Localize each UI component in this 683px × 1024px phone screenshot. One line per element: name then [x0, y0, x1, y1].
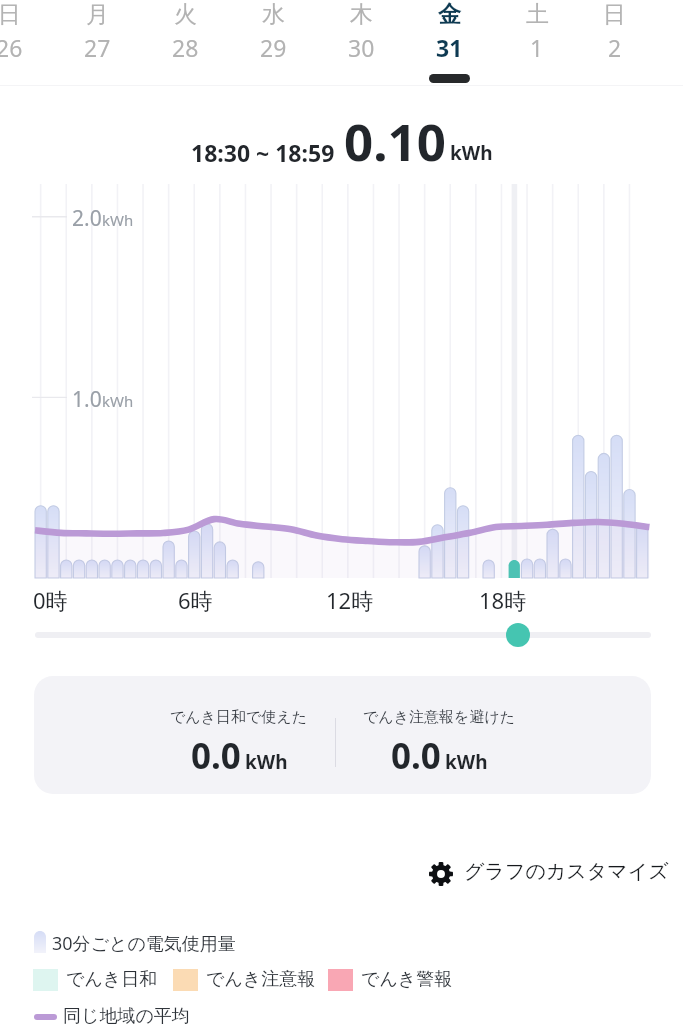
staticText: 6時	[178, 585, 213, 615]
staticText: 木	[350, 0, 373, 29]
staticText: でんき警報	[361, 968, 453, 991]
staticText: 同じ地域の平均	[63, 1005, 190, 1024]
staticText: 28	[172, 32, 199, 63]
staticText: 日	[0, 0, 21, 29]
button[interactable]: 木	[317, 0, 405, 74]
staticText: 12時	[326, 585, 374, 615]
staticText: でんき注意報を避けた	[363, 708, 516, 727]
button[interactable]: 火	[141, 0, 229, 74]
staticText: 土	[526, 0, 549, 29]
staticText: グラフのカスタマイズ	[464, 859, 669, 884]
staticText: 18時	[479, 585, 527, 615]
button[interactable]: 日	[0, 0, 53, 74]
staticText: 2.0	[72, 204, 102, 233]
staticText: 0.10	[344, 106, 446, 175]
staticText: 27	[84, 32, 111, 63]
staticText: 1.0	[72, 385, 102, 414]
staticText: 29	[260, 32, 287, 63]
staticText: 18:30 ~ 18:59	[191, 137, 335, 168]
staticText: kWh	[450, 140, 493, 166]
button[interactable]: Time slider	[506, 623, 530, 647]
staticText: 1	[530, 32, 544, 63]
button[interactable]: 金	[405, 0, 493, 83]
staticText: kWh	[445, 749, 488, 775]
staticText: kWh	[102, 210, 134, 230]
button[interactable]: 月	[53, 0, 141, 74]
staticText: 月	[86, 0, 109, 29]
button[interactable]: 土	[493, 0, 581, 74]
button[interactable]: 水	[229, 0, 317, 74]
staticText: 日	[603, 0, 626, 29]
button[interactable]: グラフのカスタマイズ	[425, 855, 673, 888]
staticText: 30分ごとの電気使用量	[52, 931, 236, 956]
staticText: でんき日和で使えた	[170, 708, 308, 727]
staticText: 31	[436, 32, 463, 63]
staticText: kWh	[102, 391, 134, 411]
staticText: kWh	[245, 749, 288, 775]
staticText: 0時	[33, 585, 68, 615]
staticText: 0.0	[191, 732, 241, 780]
staticText: 30	[348, 32, 375, 63]
staticText: 水	[262, 0, 285, 29]
staticText: 0.0	[391, 732, 441, 780]
staticText: でんき注意報	[206, 968, 316, 991]
staticText: 火	[174, 0, 197, 29]
staticText: 金	[438, 0, 461, 29]
staticText: 2	[608, 32, 622, 63]
staticText: でんき日和	[66, 968, 158, 991]
button[interactable]: 日	[581, 0, 648, 74]
staticText: 26	[0, 32, 23, 63]
